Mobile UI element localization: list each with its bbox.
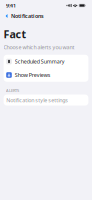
staticText: Show Previews [15,71,51,79]
staticText: ALERTS [6,88,19,93]
staticText: 9:41 [6,2,16,9]
staticText: Notification style settings [6,96,68,104]
staticText: Scheduled Summary [15,58,65,65]
staticText: Choose which alerts you want [4,44,75,51]
staticText: Fact [4,27,27,41]
button[interactable]: Scheduled Summary [4,55,88,68]
staticText: Notifications [11,12,44,20]
button[interactable]: Back [2,11,11,21]
button[interactable]: Show Previews [4,68,88,82]
